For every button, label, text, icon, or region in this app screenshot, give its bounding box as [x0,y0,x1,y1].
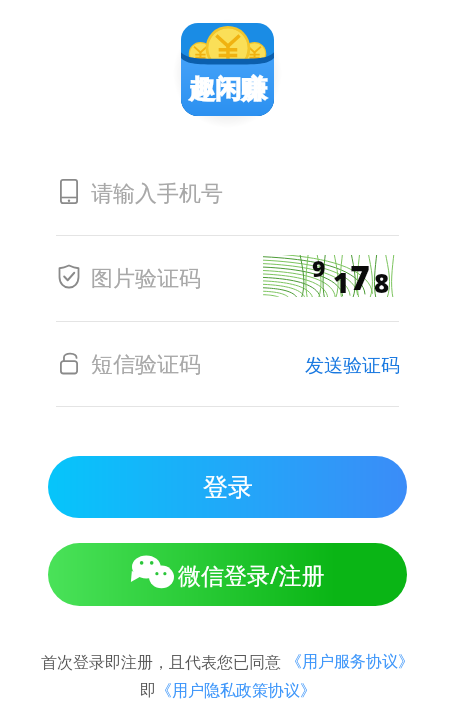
button[interactable]: 发送验证码 [300,351,405,381]
staticText: 请输入手机号 [91,180,223,208]
staticText: 即 [140,681,156,701]
button[interactable]: 请输入手机号 [58,179,399,209]
button[interactable]: 短信验证码 [58,350,399,380]
button[interactable]: 图片验证码 [58,264,399,294]
staticText: 图片验证码 [91,265,201,293]
staticText: 7 [350,255,370,296]
staticText: 发送验证码 [305,354,400,378]
button[interactable]: 《用户服务协议》 [286,652,414,672]
button[interactable]: 微信登录/注册 [48,543,407,606]
staticText: 短信验证码 [91,351,201,379]
button[interactable]: 趣闲赚 app logo [181,23,274,116]
staticText: 微信登录/注册 [178,559,325,590]
staticText: 9 [312,255,326,283]
button[interactable]: 登录 [48,456,407,518]
button[interactable]: 《用户隐私政策协议》 [156,681,316,701]
button[interactable]: Captcha image [263,255,399,297]
staticText: 首次登录即注册，且代表您已同意 [41,651,286,673]
staticText: 登录 [203,472,253,503]
staticText: 1 [333,263,350,297]
staticText: 8 [374,265,390,297]
staticText: 趣闲赚 [189,73,267,106]
